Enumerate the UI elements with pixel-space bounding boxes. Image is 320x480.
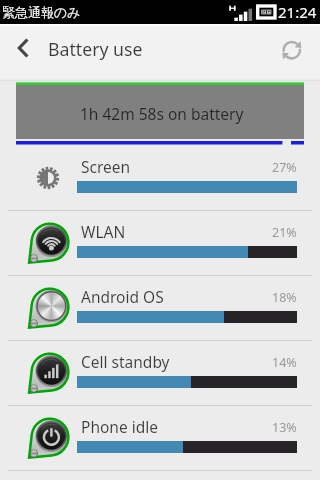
staticText: Phone idle (81, 416, 158, 437)
button[interactable]: Back (0, 26, 44, 79)
staticText: Battery use (48, 37, 143, 61)
staticText: 1h 42m 58s on battery (80, 103, 244, 124)
staticText: Android OS (81, 286, 164, 307)
staticText: Screen (81, 156, 131, 177)
staticText: Cell standby (81, 351, 170, 372)
staticText: 13% (272, 419, 297, 436)
button[interactable]: Cell standby (0, 341, 320, 405)
staticText: 18% (272, 289, 297, 306)
staticText: 14% (272, 354, 297, 371)
button[interactable]: Refresh (272, 26, 320, 79)
staticText: 21% (272, 224, 297, 241)
staticText: 21:24 (278, 2, 317, 22)
button[interactable]: Phone idle (0, 406, 320, 470)
button[interactable]: Android OS (0, 276, 320, 340)
staticText: 緊急通報のみ (2, 4, 81, 20)
button[interactable]: Screen (0, 146, 320, 210)
staticText: 27% (272, 159, 297, 176)
button[interactable]: WLAN (0, 211, 320, 275)
staticText: WLAN (81, 221, 126, 242)
